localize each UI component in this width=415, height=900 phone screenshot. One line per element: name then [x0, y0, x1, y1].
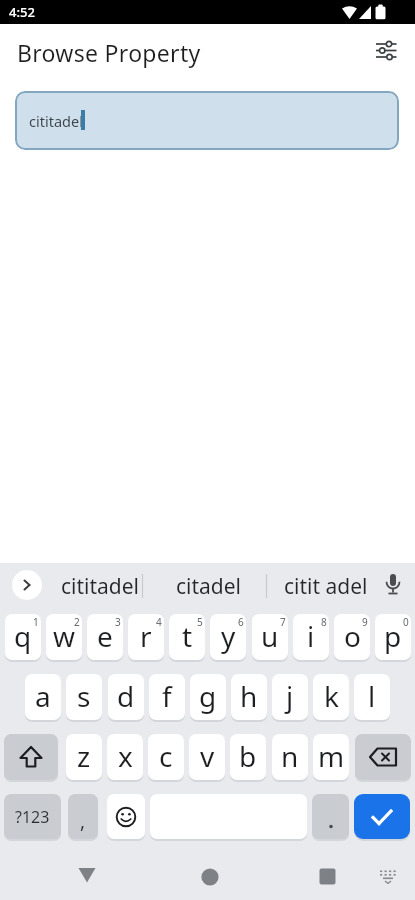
button[interactable] [376, 568, 410, 602]
staticText: p [384, 617, 402, 655]
staticText: cititadel [61, 572, 140, 601]
staticText: a [35, 677, 51, 715]
button[interactable]: citit adel [267, 563, 385, 609]
staticText: x [118, 737, 133, 775]
staticText: e [97, 617, 113, 655]
staticText: k [324, 677, 339, 715]
button[interactable]: o [334, 614, 370, 660]
staticText: 8 [321, 615, 327, 629]
button[interactable]: citadel [147, 563, 271, 609]
button[interactable] [312, 794, 349, 839]
button[interactable]: z [66, 734, 102, 780]
staticText: o [344, 617, 361, 655]
staticText: 7 [280, 615, 286, 629]
button[interactable] [4, 734, 58, 780]
staticText: cititadel [29, 111, 83, 131]
staticText: h [240, 677, 258, 715]
button[interactable]: x [107, 734, 143, 780]
button[interactable]: v [189, 734, 225, 780]
button[interactable]: i [293, 614, 329, 660]
staticText: Browse Property [17, 37, 201, 68]
button[interactable]: q [5, 614, 41, 660]
staticText: 3 [115, 615, 121, 629]
button[interactable]: e [87, 614, 123, 660]
staticText: 4:52 [9, 3, 35, 21]
button[interactable] [193, 860, 227, 894]
button[interactable]: k [313, 674, 349, 720]
staticText: r [140, 617, 152, 655]
button[interactable] [12, 570, 42, 600]
staticText: s [77, 677, 91, 715]
button[interactable]: l [354, 674, 390, 720]
staticText: f [162, 677, 172, 715]
staticText: citadel [176, 572, 242, 601]
button[interactable]: r [128, 614, 164, 660]
staticText: y [221, 617, 236, 655]
button[interactable] [355, 734, 411, 780]
button[interactable]: s [66, 674, 102, 720]
button[interactable]: p [375, 614, 411, 660]
button[interactable]: m [313, 734, 349, 780]
staticText: v [200, 737, 215, 775]
staticText: g [199, 677, 217, 715]
button[interactable]: w [46, 614, 82, 660]
button[interactable]: u [252, 614, 288, 660]
staticText: i [307, 617, 315, 655]
staticText: j [286, 677, 294, 715]
staticText: b [239, 737, 257, 775]
button[interactable]: j [272, 674, 308, 720]
staticText: 4 [156, 615, 162, 629]
button[interactable] [107, 794, 145, 839]
staticText: 9 [362, 615, 368, 629]
button[interactable]: cititadel [53, 563, 147, 609]
button[interactable]: g [190, 674, 226, 720]
button[interactable]: b [230, 734, 266, 780]
button[interactable]: t [169, 614, 205, 660]
staticText: q [14, 617, 32, 655]
staticText: u [261, 617, 279, 655]
button[interactable] [310, 859, 344, 893]
button[interactable] [368, 40, 402, 66]
staticText: z [77, 737, 91, 775]
staticText: , [80, 808, 86, 834]
staticText: citit adel [284, 572, 368, 601]
button[interactable] [354, 794, 410, 839]
staticText: 2 [74, 615, 80, 629]
staticText: m [318, 737, 345, 775]
staticText: w [53, 617, 76, 655]
button[interactable]: ?123 [4, 794, 61, 839]
button[interactable]: , [68, 794, 98, 839]
button[interactable]: n [272, 734, 308, 780]
staticText: 5 [197, 615, 203, 629]
button[interactable]: y [210, 614, 246, 660]
staticText: n [281, 737, 299, 775]
button[interactable]: h [231, 674, 267, 720]
staticText: c [159, 737, 173, 775]
staticText: d [117, 677, 135, 715]
staticText: ?123 [15, 806, 50, 828]
button[interactable] [372, 862, 404, 892]
button[interactable]: d [108, 674, 144, 720]
staticText: 1 [33, 615, 39, 629]
staticText: l [368, 677, 376, 715]
staticText: 6 [238, 615, 244, 629]
staticText: t [182, 617, 193, 655]
button[interactable]: c [148, 734, 184, 780]
button[interactable]: f [149, 674, 185, 720]
button[interactable]: cititadel [15, 91, 399, 150]
staticText: 0 [403, 615, 409, 629]
button[interactable]: a [25, 674, 61, 720]
button[interactable] [70, 858, 104, 892]
